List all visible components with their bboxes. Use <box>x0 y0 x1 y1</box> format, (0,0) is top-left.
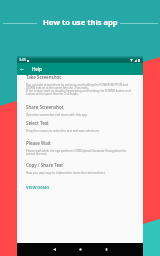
staticText: DOWN button at the same time for 2 secon… <box>26 86 138 90</box>
staticText: Help <box>32 66 42 72</box>
staticText: Open the screenshot and share with this … <box>26 113 138 117</box>
staticText: 3:49 <box>19 57 26 62</box>
staticText: Select Text <box>26 120 49 126</box>
staticText: Please Wait <box>26 140 51 146</box>
staticText: Drag the cursors to select the text and … <box>26 129 138 133</box>
staticText: button at the same time for 2 seconds. <box>26 92 138 96</box>
button[interactable]: Home <box>72 243 88 256</box>
staticText: Now you may copy to clipboard or share t… <box>26 171 138 175</box>
staticText: Please wait while the app performs OCR(O… <box>26 149 138 153</box>
button[interactable]: Recents <box>98 243 114 256</box>
staticText: VIEW DEMO <box>26 185 50 190</box>
button[interactable]: Back <box>17 63 27 75</box>
button[interactable]: Back <box>46 243 62 256</box>
staticText: Take Screenshot <box>26 74 61 80</box>
button[interactable]: VIEW DEMO <box>26 185 50 190</box>
staticText: You can take screenshots by pressing and… <box>26 83 138 87</box>
staticText: Share Screenshot <box>26 104 64 110</box>
staticText: If the screen went to standby by pressin… <box>26 89 138 93</box>
staticText: Copy / Share Text <box>26 162 64 168</box>
staticText: extract the text. <box>26 152 138 156</box>
staticText: How to use this app <box>43 17 118 27</box>
